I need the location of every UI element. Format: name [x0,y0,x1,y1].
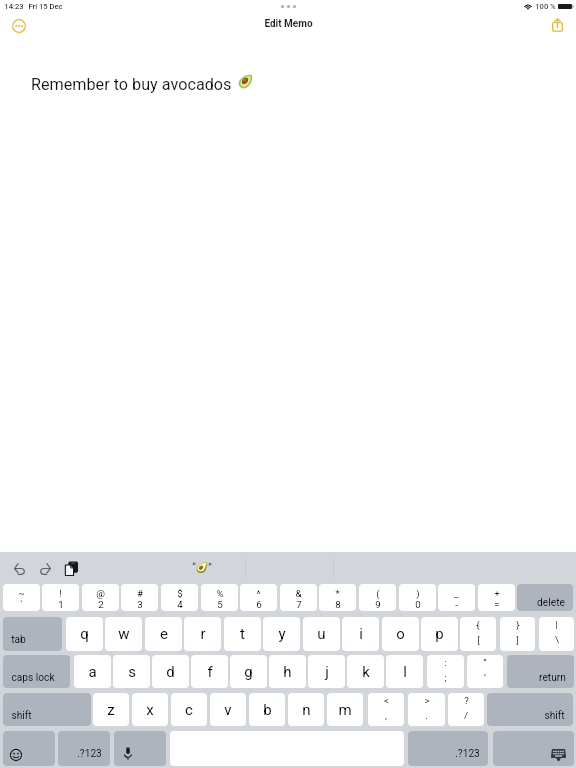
button[interactable]: ^ [240,584,277,611]
button[interactable]: ” [467,655,503,688]
button[interactable]: @ [82,584,119,611]
button[interactable]: Dictation [114,731,166,766]
button[interactable]: + [478,584,515,611]
button[interactable]: p [421,617,458,651]
staticText: \ [555,634,559,645]
button[interactable]: * [319,584,356,611]
staticText: f [207,663,213,681]
staticText: ? [464,695,469,706]
button[interactable]: ) [399,584,436,611]
button[interactable]: i [342,617,379,651]
button[interactable]: x [132,693,168,726]
button[interactable]: shift [487,693,573,726]
button[interactable]: { [460,617,496,651]
button[interactable]: & [280,584,317,611]
staticText: ’ [484,672,486,683]
button[interactable]: s [113,655,150,688]
button[interactable]: ( [359,584,396,611]
staticText: .?123 [77,748,102,760]
button[interactable]: u [303,617,340,651]
button[interactable]: Share [545,13,570,38]
staticText: : [444,657,447,668]
staticText: v [224,701,232,719]
button[interactable]: ~ [3,584,40,611]
button[interactable]: tab [3,617,62,651]
staticText: + [494,588,500,599]
button[interactable]: return [507,655,574,688]
button[interactable]: k [347,655,384,688]
button[interactable]: More options [6,13,31,38]
staticText: ^ [256,588,261,599]
staticText: z [107,701,115,719]
button[interactable]: Paste [60,557,82,579]
staticText: return [539,672,566,684]
staticText: | [555,619,558,630]
button[interactable]: r [184,617,221,651]
button[interactable]: h [269,655,306,688]
button[interactable]: Hide keyboard [493,731,574,766]
button[interactable]: n [288,693,324,726]
button[interactable]: e [145,617,182,651]
staticText: m [338,701,352,719]
staticText: t [240,625,245,643]
button[interactable]: d [152,655,189,688]
staticText: w [118,625,130,643]
staticText: } [516,619,520,630]
button[interactable]: < [368,693,404,726]
button[interactable]: “🥑” [174,560,230,576]
staticText: 6 [256,599,262,610]
button[interactable]: ? [448,693,484,726]
button[interactable]: Emoji [3,731,55,766]
button[interactable]: .?123 [58,731,110,766]
staticText: x [146,701,154,719]
staticText: g [244,663,253,681]
staticText: c [185,701,193,719]
staticText: > [424,695,430,706]
button[interactable]: $ [161,584,198,611]
button[interactable]: y [263,617,300,651]
staticText: 9 [375,599,381,610]
button[interactable]: f [191,655,228,688]
button[interactable]: % [201,584,238,611]
button[interactable]: q [66,617,103,651]
button[interactable]: Undo [9,557,31,579]
staticText: < [384,695,389,706]
button[interactable]: m [327,693,363,726]
staticText: @ [96,588,105,599]
button[interactable]: delete [517,584,573,611]
button[interactable]: a [74,655,111,688]
button[interactable]: b [249,693,285,726]
button[interactable]: g [230,655,267,688]
button[interactable]: z [93,693,129,726]
button[interactable]: v [210,693,246,726]
staticText: 100 % [535,2,556,11]
button[interactable]: > [408,693,445,726]
button[interactable]: j [308,655,345,688]
staticText: y [278,625,286,643]
button[interactable]: ! [42,584,79,611]
staticText: Remember to buy avocados [31,75,232,94]
button[interactable]: Redo [34,557,56,579]
staticText: s [128,663,136,681]
staticText: Fri 15 Dec [28,2,63,11]
button[interactable]: c [171,693,207,726]
button[interactable]: : [427,655,464,688]
button[interactable]: } [500,617,535,651]
button[interactable]: # [121,584,158,611]
staticText: e [160,625,168,643]
button[interactable]: w [105,617,142,651]
button[interactable]: l [386,655,423,688]
button[interactable]: t [224,617,261,651]
staticText: 14:23 [4,2,24,11]
button[interactable]: o [382,617,419,651]
staticText: p [435,625,444,643]
staticText: - [455,599,458,610]
staticText: caps lock [11,672,55,684]
button[interactable]: _ [438,584,475,611]
staticText: ! [59,588,62,599]
button[interactable]: | [539,617,574,651]
button[interactable]: .?123 [408,731,488,766]
button[interactable]: shift [3,693,91,726]
button[interactable]: caps lock [3,655,70,688]
